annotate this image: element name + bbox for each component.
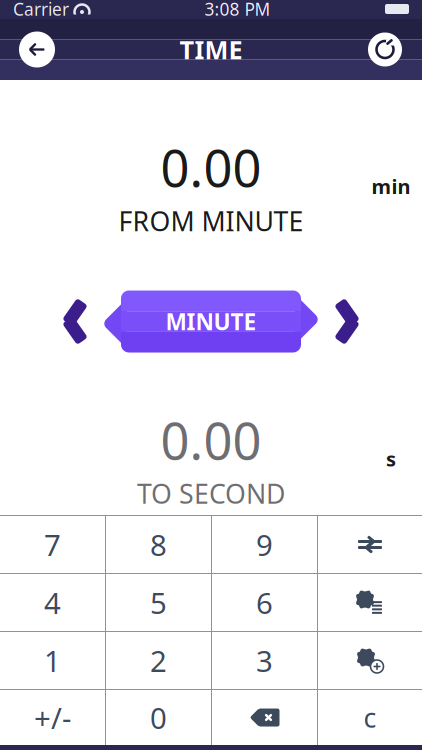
staticText: 0.00 [160, 406, 261, 474]
staticText: 0.00 [160, 134, 261, 201]
button[interactable]: 7 [0, 516, 105, 573]
staticText: 3:08 PM [204, 0, 270, 20]
button[interactable]: +/- [0, 690, 105, 745]
button[interactable]: 6 [212, 574, 317, 631]
button[interactable]: Delete [212, 690, 317, 745]
staticText: 2 [150, 641, 167, 680]
staticText: TO SECOND [137, 476, 285, 511]
staticText: c [363, 700, 376, 735]
button[interactable]: Add favorite [318, 632, 422, 689]
staticText: FROM MINUTE [118, 203, 303, 238]
staticText: MINUTE [165, 306, 256, 336]
staticText: 1 [44, 641, 61, 680]
button[interactable]: 3 [212, 632, 317, 689]
button[interactable]: Refresh [356, 19, 414, 80]
button[interactable]: Swap units [318, 516, 422, 573]
staticText: 8 [150, 525, 167, 564]
staticText: 7 [44, 525, 61, 564]
staticText: min [371, 173, 410, 199]
staticText: 0 [150, 698, 167, 737]
button[interactable]: 0 [106, 690, 211, 745]
button[interactable]: MINUTE [101, 290, 321, 352]
staticText: 6 [256, 583, 273, 622]
staticText: Carrier [13, 0, 69, 20]
staticText: 4 [44, 583, 61, 622]
staticText: 3 [256, 641, 273, 680]
staticText: +/- [34, 698, 71, 737]
staticText: s [386, 446, 396, 472]
button[interactable]: 2 [106, 632, 211, 689]
button[interactable]: 5 [106, 574, 211, 631]
staticText: TIME [179, 33, 242, 66]
button[interactable]: 1 [0, 632, 105, 689]
button[interactable]: Next unit [333, 298, 365, 344]
staticText: 5 [150, 583, 167, 622]
button[interactable]: 8 [106, 516, 211, 573]
staticText: 9 [256, 525, 273, 564]
button[interactable]: Clear [318, 690, 422, 745]
button[interactable]: 9 [212, 516, 317, 573]
button[interactable]: Previous unit [57, 298, 89, 344]
button[interactable]: Favorites list [318, 574, 422, 631]
button[interactable]: Back [8, 19, 66, 80]
button[interactable]: 4 [0, 574, 105, 631]
